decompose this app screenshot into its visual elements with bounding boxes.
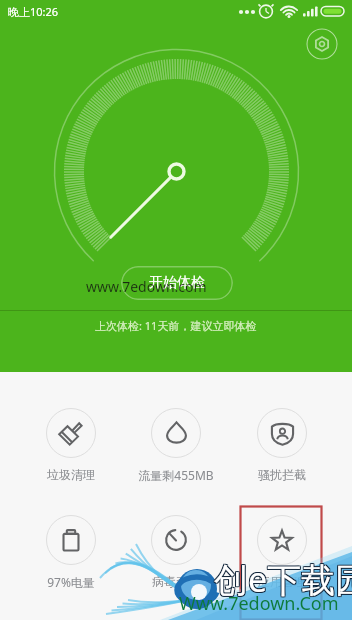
staticText: 创e下载园 — [214, 556, 352, 602]
staticText: 应用管理 — [258, 574, 306, 589]
staticText: Www.7edown.Com — [179, 591, 339, 616]
button[interactable]: 应用管理 — [237, 511, 327, 593]
staticText: 开始体检 — [149, 274, 205, 292]
button[interactable]: 垃圾清理 — [26, 404, 116, 486]
staticText: 骚扰拦截 — [258, 467, 306, 482]
staticText: 97%电量 — [47, 574, 95, 590]
staticText: 创e下载园 — [214, 555, 352, 601]
staticText: 晚上10:26 — [8, 4, 59, 19]
staticText: 病毒查杀 — [152, 574, 200, 589]
button[interactable]: 病毒查杀 — [131, 511, 221, 593]
button[interactable]: 97%电量 — [26, 511, 116, 593]
button[interactable]: 流量剩455MB — [131, 404, 221, 486]
staticText: 创e下载园 — [215, 555, 352, 601]
button[interactable]: Settings — [306, 28, 338, 60]
button[interactable]: 骚扰拦截 — [237, 404, 327, 486]
staticText: 创e下载园 — [213, 557, 352, 603]
button[interactable]: 开始体检 — [121, 266, 233, 300]
staticText: 创e下载园 — [214, 557, 352, 603]
staticText: 上次体检: 11天前，建议立即体检 — [95, 318, 257, 333]
staticText: 创e下载园 — [213, 556, 352, 602]
staticText: 创e下载园 — [215, 557, 352, 603]
staticText: 垃圾清理 — [47, 467, 95, 482]
staticText: 创e下载园 — [213, 555, 352, 601]
staticText: 创e下载园 — [215, 556, 352, 602]
staticText: www.7edown.com — [86, 277, 207, 296]
staticText: 流量剩455MB — [138, 467, 214, 483]
